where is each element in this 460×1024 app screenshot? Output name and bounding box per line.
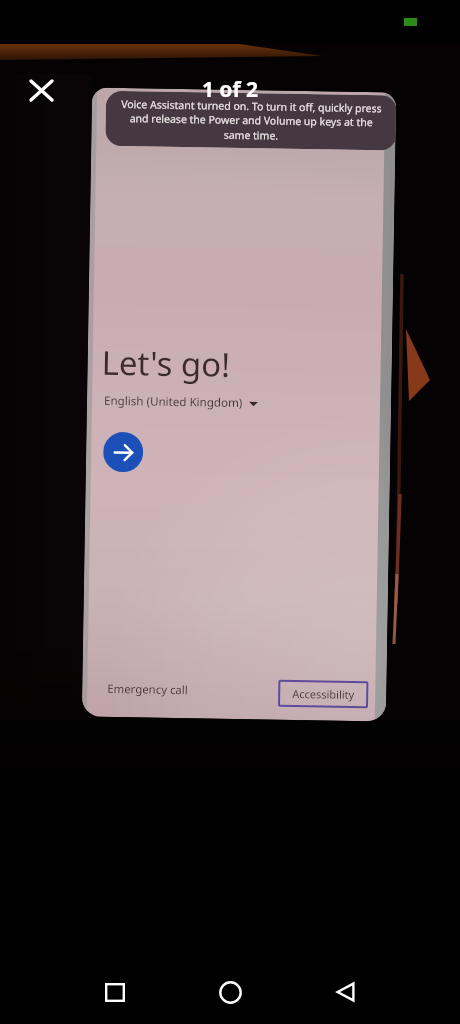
button[interactable]: Emergency call [107,681,188,698]
staticText: 1 of 2 [0,75,460,104]
button[interactable]: Next [103,432,144,472]
button[interactable]: Back [308,955,382,1024]
staticText: English (United Kingdom) [104,393,243,411]
button[interactable]: Recent apps [78,955,152,1024]
staticText: Voice Assistant turned on. To turn it of… [115,97,387,144]
button[interactable]: Accessibility [278,680,368,708]
button[interactable]: English (United Kingdom) [104,393,258,411]
button[interactable]: Home [193,955,267,1024]
staticText: Emergency call [107,681,188,698]
staticText: Let's go! [101,340,231,387]
button[interactable]: Close [25,74,58,107]
staticText: Accessibility [292,686,355,702]
